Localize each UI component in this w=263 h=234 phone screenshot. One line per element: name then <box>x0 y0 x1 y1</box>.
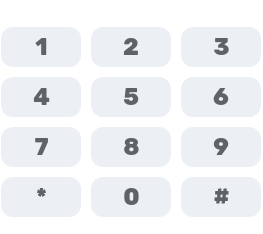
button[interactable]: Two <box>91 27 171 67</box>
staticText: * <box>36 183 47 211</box>
staticText: 6 <box>213 83 229 111</box>
button[interactable]: Zero <box>91 177 171 217</box>
staticText: 4 <box>33 83 50 111</box>
staticText: 5 <box>123 83 139 111</box>
button[interactable]: Three <box>181 27 261 67</box>
staticText: 9 <box>213 133 229 161</box>
staticText: 8 <box>123 133 140 161</box>
staticText: 1 <box>35 33 48 61</box>
staticText: 3 <box>213 33 230 61</box>
button[interactable]: Seven <box>1 127 81 167</box>
button[interactable]: Four <box>1 77 81 117</box>
button[interactable]: Star <box>1 177 81 217</box>
button[interactable]: Nine <box>181 127 261 167</box>
button[interactable]: Six <box>181 77 261 117</box>
button[interactable]: Eight <box>91 127 171 167</box>
staticText: 7 <box>34 133 49 161</box>
staticText: 0 <box>123 183 140 211</box>
staticText: # <box>213 183 230 211</box>
staticText: 2 <box>123 33 139 61</box>
button[interactable]: Pound <box>181 177 261 217</box>
button[interactable]: Five <box>91 77 171 117</box>
button[interactable]: One <box>1 27 81 67</box>
